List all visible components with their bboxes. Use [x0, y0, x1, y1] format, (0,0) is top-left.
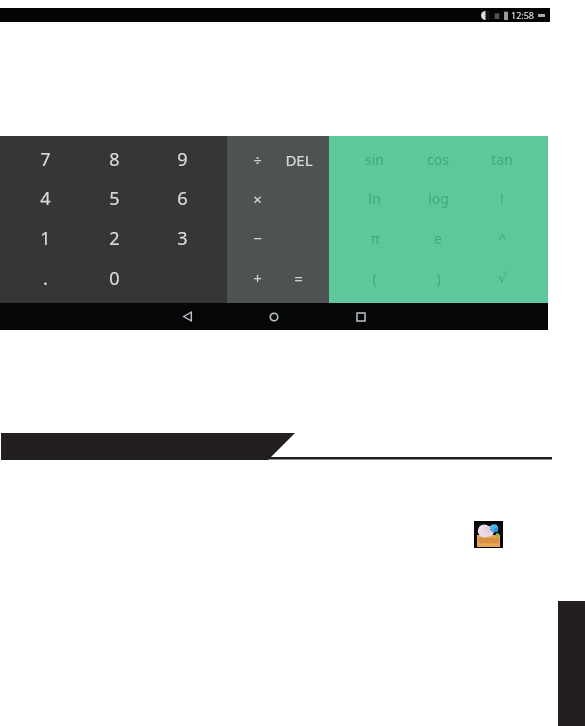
button[interactable]: + — [237, 258, 278, 298]
staticText: tan — [491, 150, 513, 169]
button[interactable]: 6 — [148, 179, 216, 218]
staticText: DEL — [285, 150, 313, 170]
staticText: 7 — [40, 147, 51, 172]
staticText: 4 — [40, 186, 51, 211]
button[interactable]: Home — [261, 303, 286, 330]
staticText: + — [253, 268, 262, 288]
staticText: ( — [372, 269, 377, 288]
staticText: 9 — [177, 147, 188, 172]
staticText: log — [428, 189, 449, 208]
staticText: 2 — [109, 226, 120, 251]
button[interactable]: 0 — [80, 258, 148, 298]
staticText: ) — [436, 269, 441, 288]
staticText: 0 — [109, 266, 120, 291]
staticText: √ — [498, 270, 507, 286]
staticText: 6 — [177, 186, 188, 211]
staticText: ! — [500, 189, 504, 208]
staticText: − — [253, 228, 262, 248]
button[interactable]: Recents — [348, 303, 373, 330]
staticText: 12:58 — [511, 9, 535, 21]
button[interactable]: . — [11, 258, 80, 298]
button[interactable]: = — [278, 258, 319, 298]
staticText: ^ — [498, 229, 507, 248]
staticText: ln — [368, 189, 381, 208]
button[interactable]: ÷ — [237, 140, 278, 179]
button[interactable]: 5 — [80, 179, 148, 218]
button[interactable]: 2 — [80, 218, 148, 258]
staticText: cos — [427, 150, 449, 169]
button[interactable]: cos — [406, 140, 470, 179]
button[interactable]: 3 — [148, 218, 216, 258]
button[interactable]: 7 — [11, 140, 80, 179]
staticText: ÷ — [253, 150, 262, 170]
button[interactable]: π — [343, 218, 406, 258]
button[interactable]: Back — [175, 303, 200, 330]
staticText: × — [253, 189, 262, 209]
button[interactable]: − — [237, 218, 278, 258]
button[interactable]: log — [406, 179, 470, 218]
staticText: sin — [365, 150, 384, 169]
staticText: 1 — [40, 226, 51, 251]
button[interactable]: 1 — [11, 218, 80, 258]
button[interactable]: sin — [343, 140, 406, 179]
staticText: 8 — [109, 147, 120, 172]
button[interactable]: Photo thumbnail — [474, 521, 503, 548]
staticText: 5 — [109, 186, 120, 211]
staticText: . — [43, 266, 48, 291]
button[interactable]: ln — [343, 179, 406, 218]
button[interactable]: 9 — [148, 140, 216, 179]
button[interactable]: × — [237, 179, 278, 218]
staticText: 3 — [177, 226, 188, 251]
button[interactable]: 4 — [11, 179, 80, 218]
button[interactable]: DEL — [278, 140, 319, 179]
staticText: e — [434, 229, 442, 248]
button[interactable]: 8 — [80, 140, 148, 179]
button[interactable]: tan — [470, 140, 534, 179]
staticText: = — [294, 268, 303, 288]
staticText: π — [370, 229, 380, 248]
